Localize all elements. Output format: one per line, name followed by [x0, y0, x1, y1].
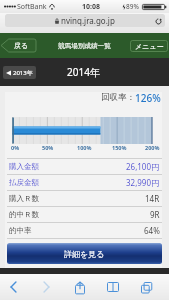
- staticText: 64%: [144, 225, 160, 236]
- staticText: 126%: [135, 91, 161, 105]
- button[interactable]: Back: [4, 278, 22, 296]
- button[interactable]: 的中Ｒ数: [9, 207, 160, 222]
- button[interactable]: 購入Ｒ数: [9, 191, 160, 206]
- button[interactable]: Reload: [154, 17, 162, 25]
- staticText: nvinq.jra.go.jp: [61, 15, 115, 26]
- staticText: 払戻金額: [9, 178, 39, 187]
- button[interactable]: Bookmarks: [104, 278, 122, 296]
- button[interactable]: 払戻金額: [9, 175, 160, 190]
- button[interactable]: 購入金額: [9, 159, 160, 174]
- staticText: 競馬場別成績一覧: [58, 42, 111, 50]
- button[interactable]: 戻る: [1, 39, 36, 52]
- staticText: 戻る: [14, 41, 29, 50]
- button[interactable]: 的中率: [9, 223, 160, 238]
- staticText: 14R: [145, 193, 160, 204]
- staticText: 2014年: [67, 65, 100, 79]
- staticText: 9R: [150, 209, 160, 220]
- staticText: メニュー: [135, 42, 164, 51]
- staticText: 回収率：: [101, 92, 135, 103]
- staticText: 的中率: [9, 226, 32, 235]
- staticText: 購入金額: [9, 162, 39, 171]
- staticText: 50%: [42, 144, 54, 151]
- button[interactable]: 詳細を見る: [7, 243, 162, 264]
- staticText: 詳細を見る: [64, 249, 105, 259]
- staticText: SoftBank: [17, 2, 47, 12]
- staticText: 0%: [11, 144, 20, 151]
- staticText: 的中Ｒ数: [9, 210, 39, 219]
- staticText: 32,990円: [126, 177, 160, 188]
- staticText: 購入Ｒ数: [9, 194, 39, 203]
- button[interactable]: Forward: [37, 278, 55, 296]
- staticText: 89%: [126, 2, 139, 11]
- button[interactable]: Share: [71, 278, 89, 296]
- button[interactable]: Tabs: [137, 278, 155, 296]
- button[interactable]: メニュー: [130, 40, 168, 52]
- button[interactable]: 2013年: [6, 66, 33, 79]
- staticText: 26,100円: [126, 161, 160, 172]
- staticText: 200%: [145, 144, 160, 151]
- staticText: 2013年: [13, 69, 33, 77]
- staticText: 10:08: [82, 2, 100, 12]
- staticText: 100%: [77, 144, 92, 151]
- button[interactable]: nvinq.jra.go.jp: [5, 14, 165, 27]
- staticText: 150%: [112, 144, 127, 151]
